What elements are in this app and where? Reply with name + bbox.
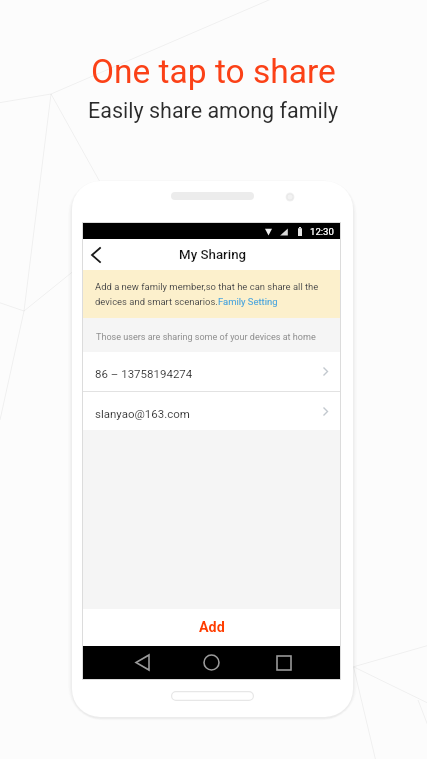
staticText: One tap to share — [91, 52, 336, 91]
button[interactable]: Home — [190, 646, 233, 679]
staticText: Those users are sharing some of your dev… — [96, 332, 316, 343]
button[interactable]: Recents — [262, 646, 305, 679]
button[interactable]: Back — [121, 646, 164, 679]
staticText: Add a new family member,so that he can s… — [95, 281, 319, 292]
staticText: 12:30 — [310, 226, 334, 237]
button[interactable]: Family Setting — [218, 296, 278, 307]
button[interactable]: 86 – 13758194274 — [83, 352, 340, 391]
staticText: My Sharing — [179, 247, 247, 263]
staticText: Easily share among family — [88, 98, 339, 123]
staticText: 86 – 13758194274 — [95, 367, 193, 380]
staticText: slanyao@163.com — [95, 407, 190, 420]
button[interactable]: Add — [83, 609, 340, 646]
staticText: devices and smart scenarios. — [95, 296, 218, 307]
button[interactable]: Back — [83, 239, 109, 270]
staticText: Add — [199, 619, 225, 636]
button[interactable]: slanyao@163.com — [83, 392, 340, 430]
